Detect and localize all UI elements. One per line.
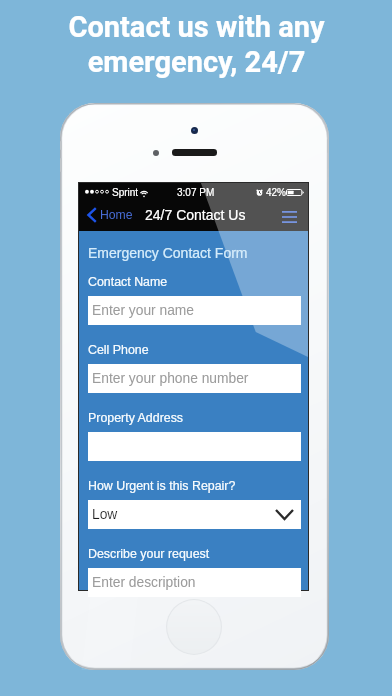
staticText: Cell Phone [88,343,149,357]
staticText: Contact us with any emergency, 24/7 [68,10,325,79]
staticText: Emergency Contact Form [88,245,248,261]
staticText: Enter your phone number [92,371,249,386]
staticText: Property Address [88,411,184,425]
staticText: Enter description [92,575,196,590]
staticText: How Urgent is this Repair? [88,479,236,493]
staticText: Home [100,208,133,222]
staticText: 3:07 PM [177,187,215,198]
staticText: 42% [266,187,287,198]
staticText: Enter your name [92,303,194,318]
staticText: Low [92,507,118,522]
button[interactable]: Low [88,500,301,529]
staticText: Contact Name [88,275,168,289]
button[interactable]: Home [85,201,139,229]
button[interactable]: Enter description [88,568,301,597]
button[interactable]: Enter your phone number [88,364,301,393]
button[interactable]: Enter your name [88,296,301,325]
staticText: Describe your request [88,547,210,561]
button[interactable]: Menu [276,203,303,231]
staticText: Sprint [112,187,139,198]
staticText: 24/7 Contact Us [145,207,246,223]
